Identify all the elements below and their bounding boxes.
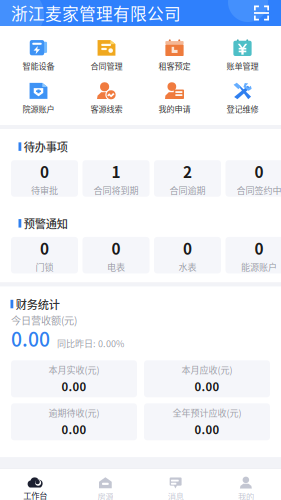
staticText: 0 (40, 237, 49, 259)
button[interactable]: 逾期待收(元) (11, 403, 137, 440)
staticText: 合同管理 (90, 60, 122, 72)
staticText: 今日营收额(元) (11, 313, 77, 327)
staticText: 0 (111, 237, 120, 259)
staticText: 同比昨日: 0.00% (57, 337, 124, 350)
staticText: 电表 (107, 260, 125, 273)
staticText: 本月应收(元) (181, 363, 232, 376)
staticText: 水表 (178, 260, 196, 273)
staticText: 能源账户 (241, 260, 277, 273)
staticText: 合同逾期 (169, 183, 205, 197)
staticText: 我的 (238, 490, 254, 500)
staticText: 智能设备 (22, 60, 54, 72)
button[interactable]: 0 (11, 237, 78, 273)
staticText: 预警通知 (24, 215, 68, 231)
staticText: 账单管理 (226, 60, 258, 72)
button[interactable]: 我的申请 (140, 77, 208, 120)
button[interactable]: 2 (154, 160, 221, 197)
button[interactable]: 0 (154, 237, 221, 273)
staticText: 全年预计应收(元) (172, 406, 241, 419)
button[interactable]: 消息 (140, 469, 211, 500)
staticText: 0.00 (61, 378, 86, 395)
staticText: 客源线索 (90, 103, 122, 115)
button[interactable]: 工作台 (0, 469, 70, 500)
button[interactable]: 登记维修 (208, 77, 276, 120)
staticText: 合同将到期 (93, 183, 138, 197)
staticText: 2 (183, 160, 192, 182)
staticText: 工作台 (23, 489, 47, 500)
button[interactable]: 0 (225, 237, 281, 273)
staticText: 浙江麦家管理有限公司 (11, 1, 181, 25)
staticText: 0.00 (194, 421, 219, 438)
staticText: 消息 (168, 490, 184, 500)
button[interactable]: 智能设备 (4, 34, 72, 77)
staticText: 房源 (97, 490, 113, 500)
button[interactable]: 0 (11, 160, 78, 197)
staticText: 0.00 (11, 324, 50, 352)
staticText: 0 (254, 160, 263, 182)
button[interactable]: 本月实收(元) (11, 360, 137, 397)
staticText: 门锁 (35, 260, 53, 273)
button[interactable]: 扫一扫 (251, 2, 272, 23)
button[interactable]: 0 (225, 160, 281, 197)
button[interactable]: 账单管理 (208, 34, 276, 77)
staticText: 登记维修 (226, 103, 258, 115)
staticText: 0 (254, 237, 263, 259)
button[interactable]: 本月应收(元) (144, 360, 270, 397)
button[interactable]: 客源线索 (72, 77, 140, 120)
button[interactable]: 我的 (211, 469, 281, 500)
staticText: 合同签约中 (236, 183, 281, 197)
button[interactable]: 租客预定 (140, 34, 208, 77)
staticText: 1 (111, 160, 120, 182)
staticText: 租客预定 (158, 60, 190, 72)
button[interactable]: 合同管理 (72, 34, 140, 77)
button[interactable]: 1 (82, 160, 149, 197)
staticText: 财务统计 (16, 296, 60, 312)
staticText: 我的申请 (158, 103, 190, 115)
button[interactable]: 院源账户 (4, 77, 72, 120)
staticText: 本月实收(元) (48, 363, 99, 376)
button[interactable]: 0 (82, 237, 149, 273)
staticText: 院源账户 (22, 103, 54, 115)
staticText: 0 (183, 237, 192, 259)
staticText: 0 (40, 160, 49, 182)
staticText: 待办事项 (24, 138, 68, 155)
staticText: 0.00 (194, 378, 219, 395)
staticText: 待审批 (31, 183, 58, 197)
button[interactable]: 全年预计应收(元) (144, 403, 270, 440)
button[interactable]: 房源 (70, 469, 140, 500)
staticText: 0.00 (61, 421, 86, 438)
staticText: 逾期待收(元) (48, 406, 99, 419)
